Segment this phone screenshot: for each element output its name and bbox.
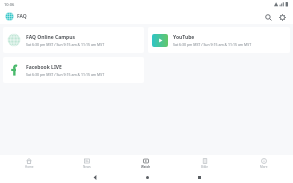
button[interactable]: Bible [175, 155, 234, 171]
staticText: Facebook LIVE [26, 64, 62, 71]
staticText: Sat 6:30 pm MST / Sun 9:15 am & 11:15 am… [26, 42, 105, 47]
button[interactable]: YouTube [148, 27, 290, 53]
staticText: FAQ Online Campus [26, 34, 75, 41]
staticText: Bible [201, 165, 209, 169]
staticText: More [260, 165, 268, 169]
button[interactable]: FAQ Online Campus [3, 27, 144, 53]
button[interactable]: Facebook LIVE [3, 57, 144, 83]
button[interactable]: Search [262, 11, 274, 23]
button[interactable]: News [58, 155, 116, 171]
button[interactable]: Settings [276, 11, 288, 23]
staticText: YouTube [173, 34, 195, 41]
staticText: FAQ [17, 13, 27, 20]
button[interactable]: Recent apps [187, 171, 211, 183]
button[interactable]: Home [0, 155, 58, 171]
button[interactable]: More [234, 155, 293, 171]
button[interactable]: Watch [116, 155, 175, 171]
staticText: 10:06 [4, 2, 15, 7]
staticText: News [83, 165, 91, 169]
staticText: Home [25, 165, 34, 169]
staticText: Sat 6:30 pm MST / Sun 9:15 am & 11:15 am… [173, 42, 252, 47]
staticText: Watch [141, 165, 151, 169]
button[interactable]: Home [135, 171, 159, 183]
staticText: Sat 6:30 pm MST / Sun 9:15 am & 11:15 am… [26, 72, 105, 77]
button[interactable]: Back [83, 171, 107, 183]
